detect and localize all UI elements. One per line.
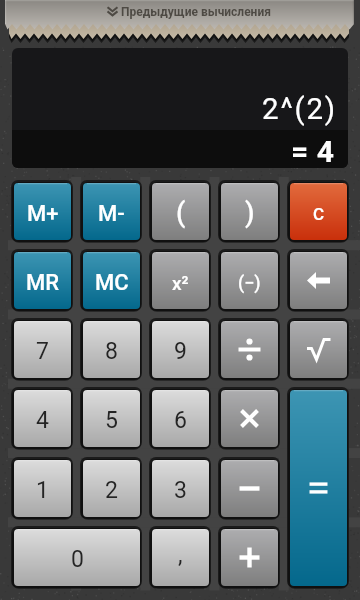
staticText: 7 [36, 338, 49, 365]
staticText: 9 [174, 338, 187, 365]
staticText: , [178, 542, 183, 569]
staticText: = 4 [291, 134, 335, 168]
button[interactable]: Equals [284, 384, 352, 592]
staticText: x² [172, 272, 189, 294]
button[interactable]: Square root [284, 315, 352, 384]
staticText: 8 [105, 338, 118, 365]
button[interactable]: Minus [215, 454, 283, 523]
button[interactable]: 4 [8, 384, 76, 453]
button[interactable]: Divide [215, 315, 283, 384]
button[interactable]: Square [146, 246, 214, 315]
button[interactable]: 3 [146, 454, 214, 523]
button[interactable]: Предыдущие вычисления [106, 1, 266, 22]
staticText: ( [176, 197, 186, 229]
staticText: ) [245, 197, 255, 229]
staticText: 3 [174, 477, 187, 504]
button[interactable]: ( [146, 177, 214, 246]
button[interactable]: ) [215, 177, 283, 246]
button[interactable]: , [146, 523, 214, 592]
button[interactable]: 2 [77, 454, 145, 523]
staticText: (−) [238, 272, 261, 293]
staticText: 6 [174, 407, 187, 434]
button[interactable]: 7 [8, 315, 76, 384]
staticText: 0 [71, 546, 84, 573]
button[interactable]: 5 [77, 384, 145, 453]
staticText: MR [26, 270, 60, 296]
staticText: 2^(2) [262, 92, 337, 127]
staticText: M- [98, 201, 125, 227]
button[interactable]: 0 [8, 523, 145, 592]
button[interactable]: MC [77, 246, 145, 315]
staticText: C [313, 204, 325, 224]
button[interactable]: 8 [77, 315, 145, 384]
button[interactable]: MR [8, 246, 76, 315]
staticText: M+ [27, 201, 59, 227]
button[interactable]: Multiply [215, 384, 283, 453]
button[interactable]: 1 [8, 454, 76, 523]
staticText: Предыдущие вычисления [121, 5, 271, 19]
button[interactable]: M+ [8, 177, 76, 246]
button[interactable]: Clear [284, 177, 352, 246]
button[interactable]: M- [77, 177, 145, 246]
staticText: 5 [105, 407, 118, 434]
button[interactable]: 6 [146, 384, 214, 453]
button[interactable]: Plus [215, 523, 283, 592]
button[interactable]: Backspace [284, 246, 352, 315]
staticText: 2 [105, 477, 118, 504]
button[interactable]: 9 [146, 315, 214, 384]
staticText: MC [95, 270, 129, 296]
button[interactable]: Negate [215, 246, 283, 315]
staticText: 1 [36, 477, 49, 504]
staticText: 4 [36, 407, 49, 434]
